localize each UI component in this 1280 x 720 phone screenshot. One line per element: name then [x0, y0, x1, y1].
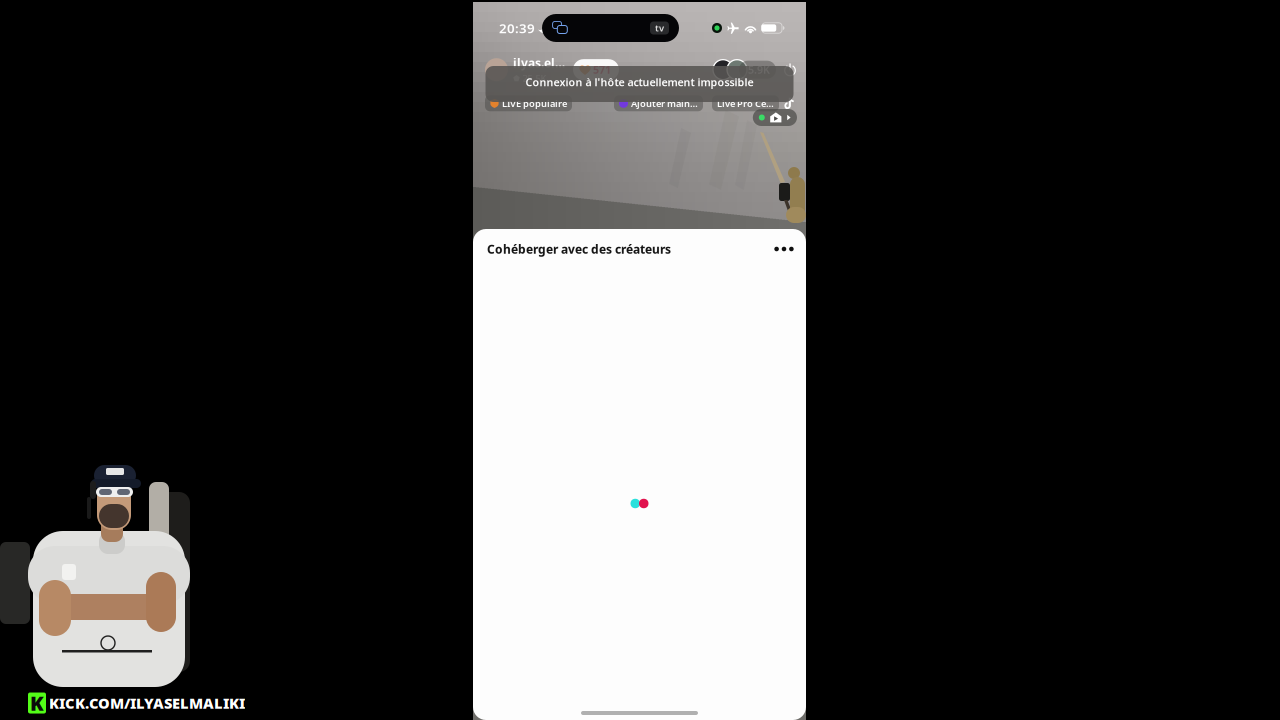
staticText: 20:39	[499, 19, 535, 37]
staticText: tv	[655, 22, 664, 34]
button[interactable]: Plus d'options	[767, 234, 801, 264]
staticText: 5.9K	[748, 63, 770, 77]
staticText: ilyas.el…	[513, 55, 565, 71]
button[interactable]: Profil ilyas.el	[485, 55, 565, 84]
staticText: 571	[593, 63, 611, 77]
button[interactable]: 5,9 K spectateurs	[713, 60, 776, 80]
staticText: Live Pro Ce…	[717, 97, 774, 109]
button[interactable]: Ajouter maintenant	[614, 95, 703, 111]
button[interactable]: Studio LIVE	[753, 109, 797, 126]
button[interactable]: LIVE populaire	[485, 95, 572, 111]
staticText: LIVE populaire	[502, 97, 567, 109]
staticText: 25.5K	[522, 72, 546, 84]
button[interactable]: Live Pro Center	[703, 95, 779, 111]
button[interactable]: 571 j'aime	[573, 59, 619, 80]
staticText: Cohéberger avec des créateurs	[487, 241, 671, 257]
staticText: Connexion à l'hôte actuellement impossib…	[525, 75, 753, 89]
button[interactable]: Terminer le LIVE	[776, 63, 798, 77]
staticText: KICK.COM/ILYASELMALIKI	[49, 693, 245, 713]
staticText: Ajouter main…	[631, 97, 698, 109]
staticText: K	[30, 690, 44, 716]
